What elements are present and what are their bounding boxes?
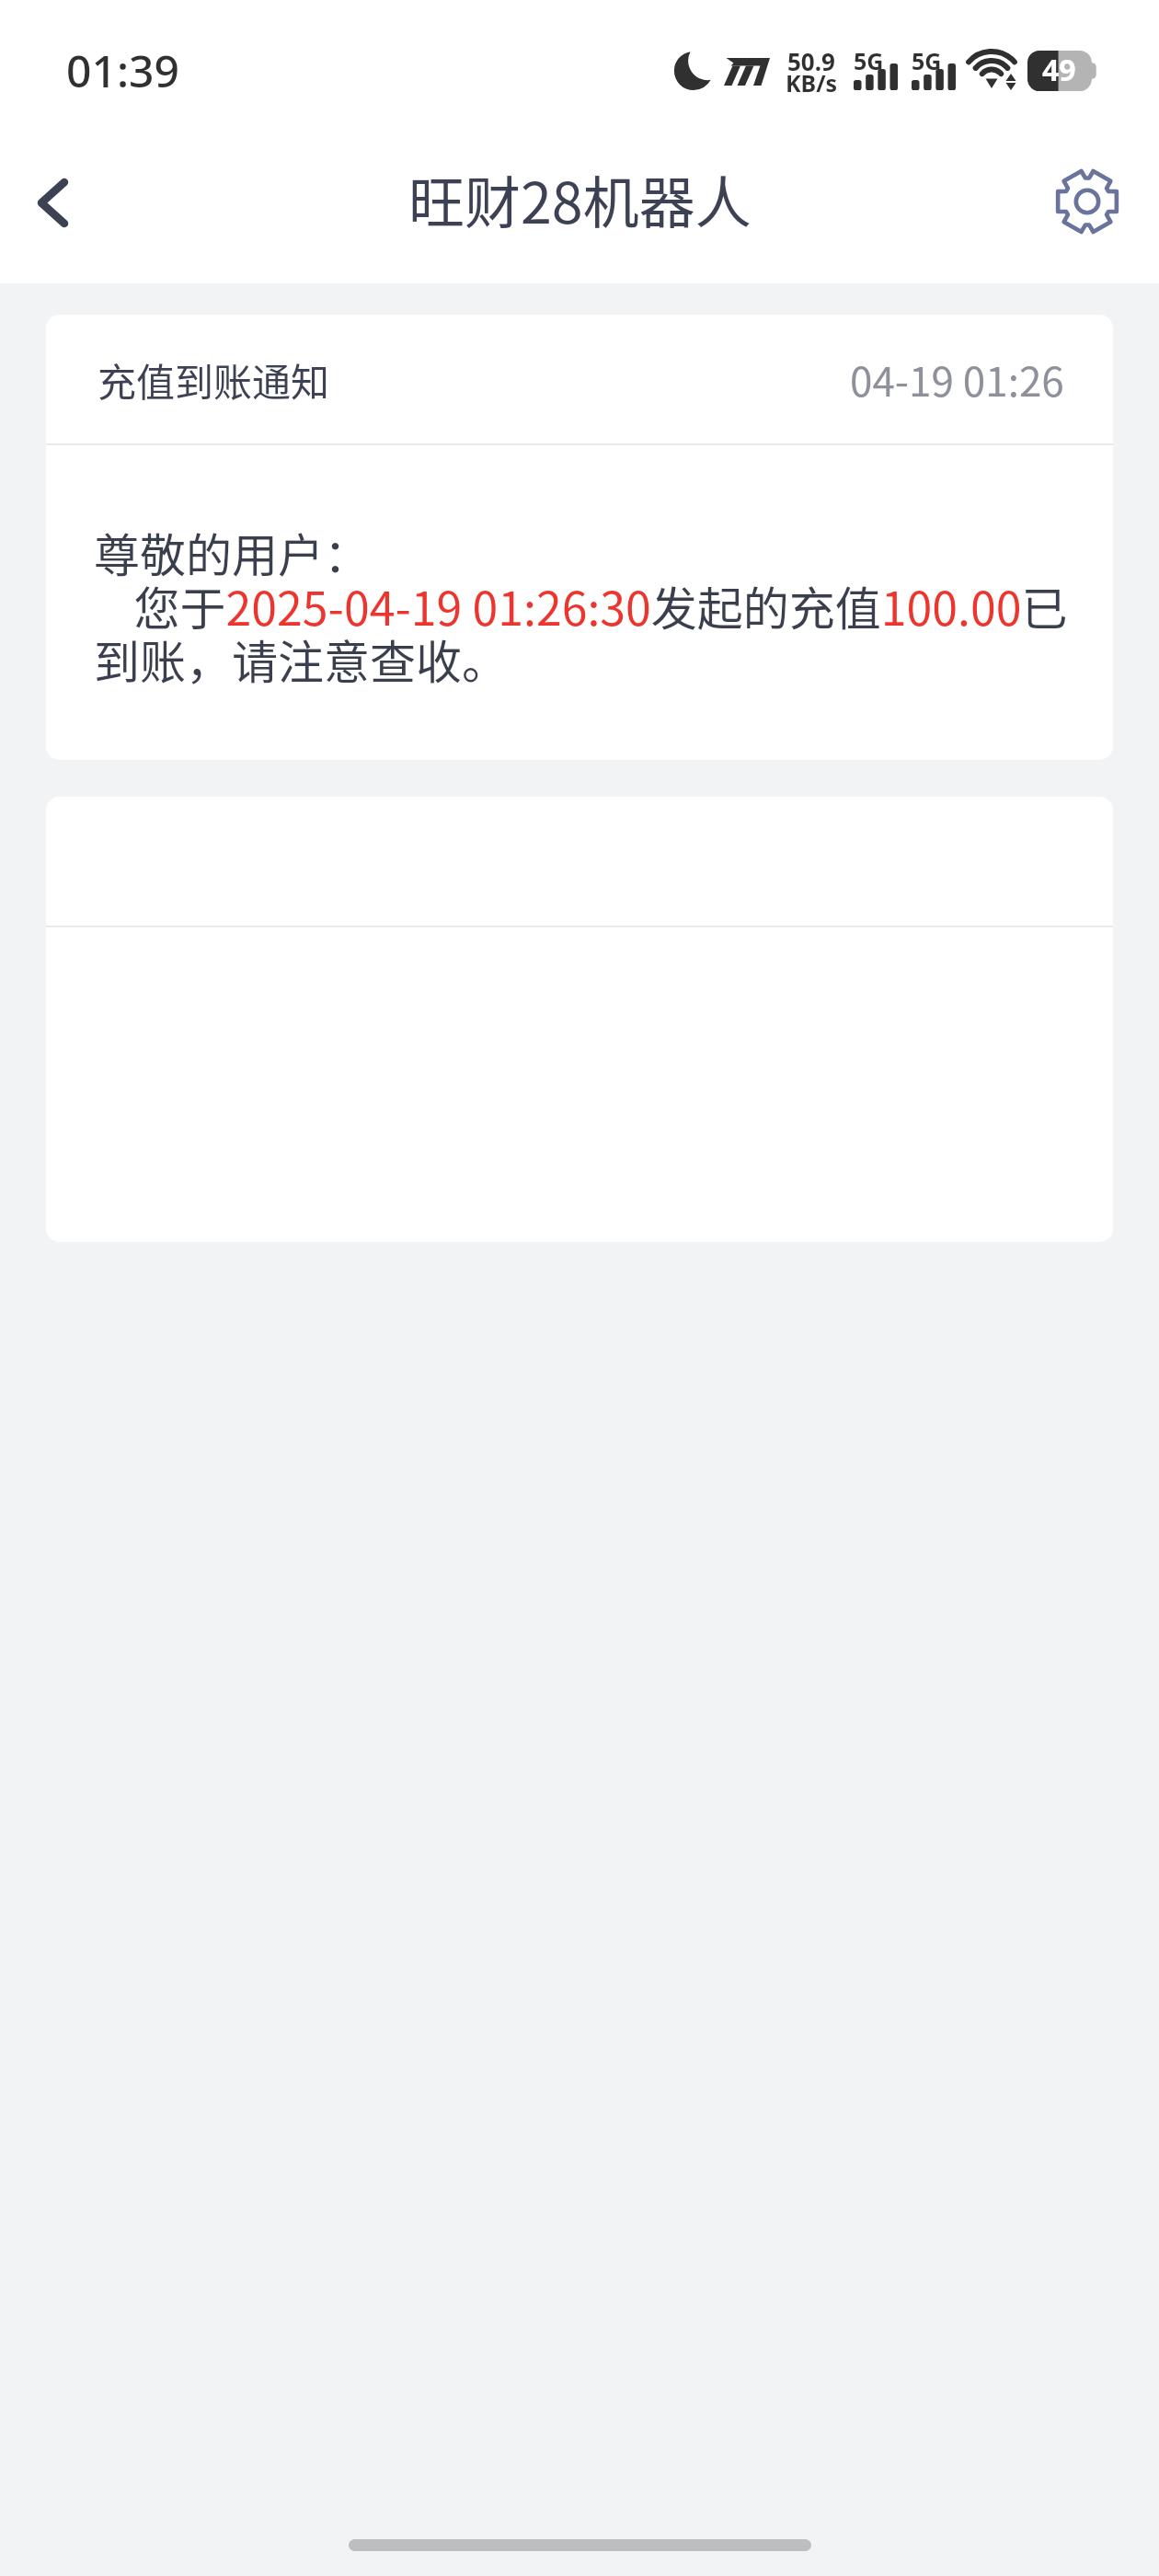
staticText: 尊敬的用户： 您于2025-04-19 01:26:30发起的充值100.00已… [94,519,1089,693]
staticText: 旺财28机器人 [408,158,752,239]
staticText: 5G [912,45,942,76]
staticText: 50.9 [787,45,835,77]
staticText: 49 [1042,50,1076,90]
staticText: KB/s [786,67,838,98]
staticText: 01:39 [66,40,179,100]
staticText: 04-19 01:26 [850,350,1064,408]
button[interactable]: Back [1,151,104,254]
staticText: 5G [854,45,884,76]
button[interactable]: 充值到账通知 [46,315,1113,760]
staticText: 充值到账通知 [98,351,330,408]
button[interactable]: Settings [1036,150,1139,253]
